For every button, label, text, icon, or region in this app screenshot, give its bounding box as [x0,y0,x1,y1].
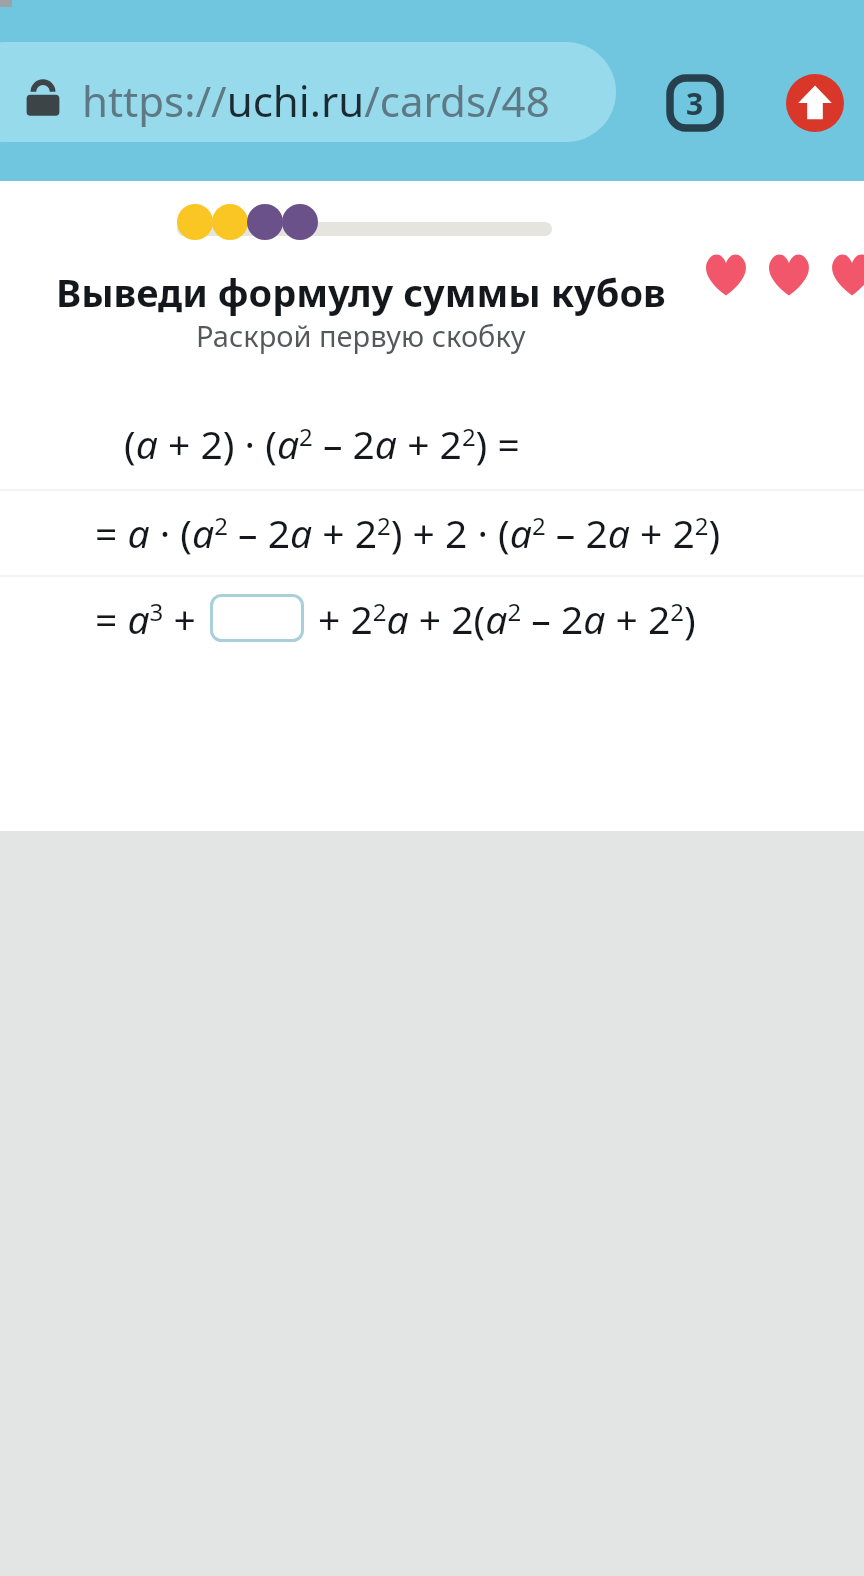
button[interactable]: Tabs, 3 open [666,74,724,132]
button[interactable]: Upload [786,74,844,132]
staticText: Раскрой первую скобку [196,316,526,355]
staticText: = a3 + [95,592,196,645]
staticText: 3 [686,83,704,124]
button[interactable]: Secure connection [16,72,70,126]
staticText: Выведи формулу суммы кубов [56,266,666,318]
staticText: + 22a + 2(a2 – 2a + 22) [318,592,696,645]
staticText: = a · (a2 – 2a + 22) + 2 · (a2 – 2a + 22… [95,506,721,559]
button[interactable] [0,42,616,142]
staticText: (a + 2) · (a2 – 2a + 22) = [124,417,520,470]
button[interactable]: Answer input [210,594,304,642]
staticText: https://uchi.ru/cards/48 [82,72,550,129]
